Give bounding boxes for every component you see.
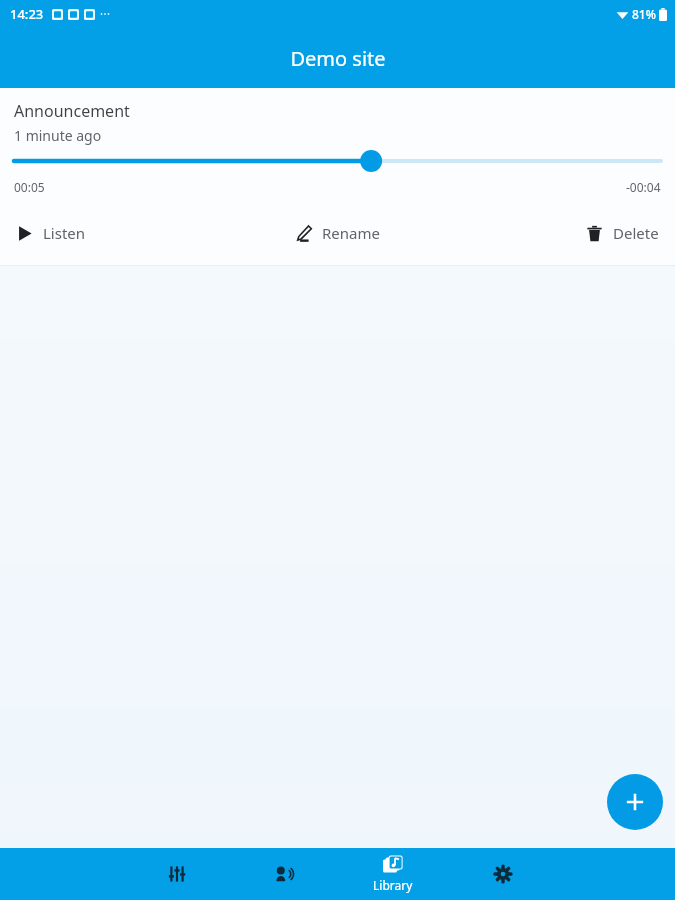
staticText: Rename (322, 223, 380, 243)
staticText: Demo site (290, 45, 386, 72)
staticText: Delete (613, 223, 659, 243)
button[interactable]: Delete (450, 213, 675, 253)
button[interactable] (14, 145, 661, 177)
button[interactable]: Listen (0, 213, 225, 253)
staticText: Announcement (14, 100, 130, 122)
staticText: 1 minute ago (14, 126, 102, 145)
button[interactable]: Voice (257, 848, 311, 900)
staticText: Listen (43, 223, 86, 243)
button[interactable]: Settings (476, 848, 530, 900)
button[interactable]: Library (363, 848, 423, 900)
staticText: Library (373, 877, 413, 893)
button[interactable]: Equalizer (150, 848, 204, 900)
staticText: 14:23 (10, 5, 44, 23)
button[interactable]: Rename (225, 213, 450, 253)
staticText: 00:05 (14, 179, 45, 195)
staticText: 81% (632, 6, 656, 22)
staticText: -00:04 (626, 179, 661, 195)
button[interactable]: Announcement (0, 88, 675, 266)
button[interactable]: Add recording (607, 774, 663, 830)
